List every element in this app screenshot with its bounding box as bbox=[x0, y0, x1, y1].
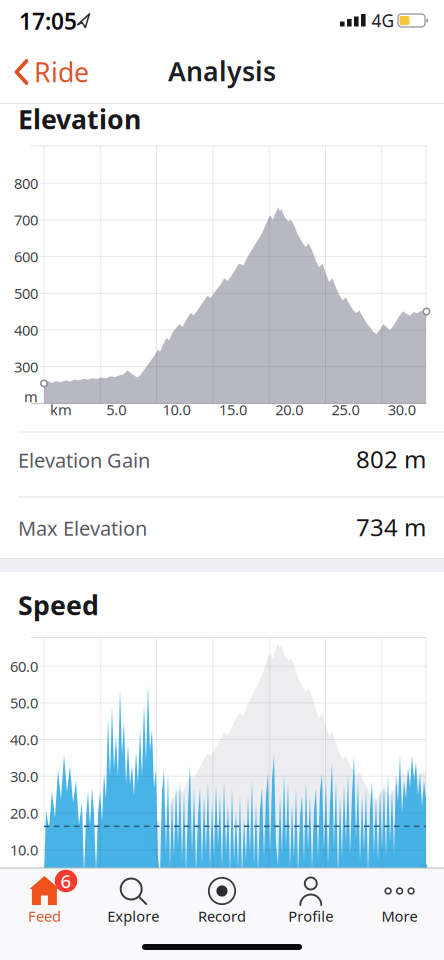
button[interactable]: More bbox=[360, 869, 440, 927]
staticText: Ride bbox=[34, 54, 89, 90]
staticText: Record bbox=[198, 906, 246, 926]
staticText: 20.0 bbox=[275, 400, 303, 419]
staticText: 17:05 bbox=[19, 6, 77, 36]
staticText: Profile bbox=[288, 906, 333, 926]
staticText: 50.0 bbox=[10, 693, 38, 713]
staticText: Feed bbox=[28, 906, 61, 926]
staticText: 10.0 bbox=[10, 840, 38, 860]
staticText: 30.0 bbox=[388, 400, 416, 419]
staticText: 20.0 bbox=[10, 803, 38, 823]
button[interactable]: Back to Ride bbox=[14, 50, 104, 94]
staticText: 802 m bbox=[356, 443, 426, 475]
staticText: Max Elevation bbox=[18, 515, 147, 541]
staticText: Explore bbox=[107, 906, 159, 926]
staticText: Elevation Gain bbox=[18, 447, 150, 473]
staticText: 40.0 bbox=[10, 730, 38, 749]
staticText: 300 bbox=[14, 357, 38, 376]
staticText: km bbox=[50, 400, 72, 419]
staticText: 60.0 bbox=[10, 656, 38, 676]
button[interactable]: Record bbox=[182, 869, 262, 927]
staticText: 400 bbox=[14, 320, 38, 340]
staticText: 500 bbox=[14, 284, 38, 303]
staticText: 15.0 bbox=[219, 400, 247, 419]
staticText: 30.0 bbox=[10, 767, 38, 786]
staticText: 10.0 bbox=[163, 400, 191, 419]
staticText: 6 bbox=[60, 869, 71, 893]
button[interactable]: Profile bbox=[271, 869, 351, 927]
staticText: Analysis bbox=[168, 53, 276, 89]
staticText: 800 bbox=[14, 173, 38, 193]
staticText: Elevation bbox=[18, 101, 141, 137]
staticText: 4G bbox=[371, 9, 394, 32]
staticText: Speed bbox=[18, 587, 99, 623]
staticText: 700 bbox=[14, 210, 38, 230]
staticText: 734 m bbox=[356, 511, 426, 543]
staticText: 25.0 bbox=[331, 400, 359, 419]
staticText: m bbox=[24, 387, 38, 406]
staticText: 5.0 bbox=[106, 400, 126, 419]
staticText: More bbox=[382, 906, 418, 926]
button[interactable]: Explore bbox=[93, 869, 173, 927]
staticText: 600 bbox=[14, 247, 38, 266]
button[interactable]: Feed bbox=[4, 869, 84, 927]
